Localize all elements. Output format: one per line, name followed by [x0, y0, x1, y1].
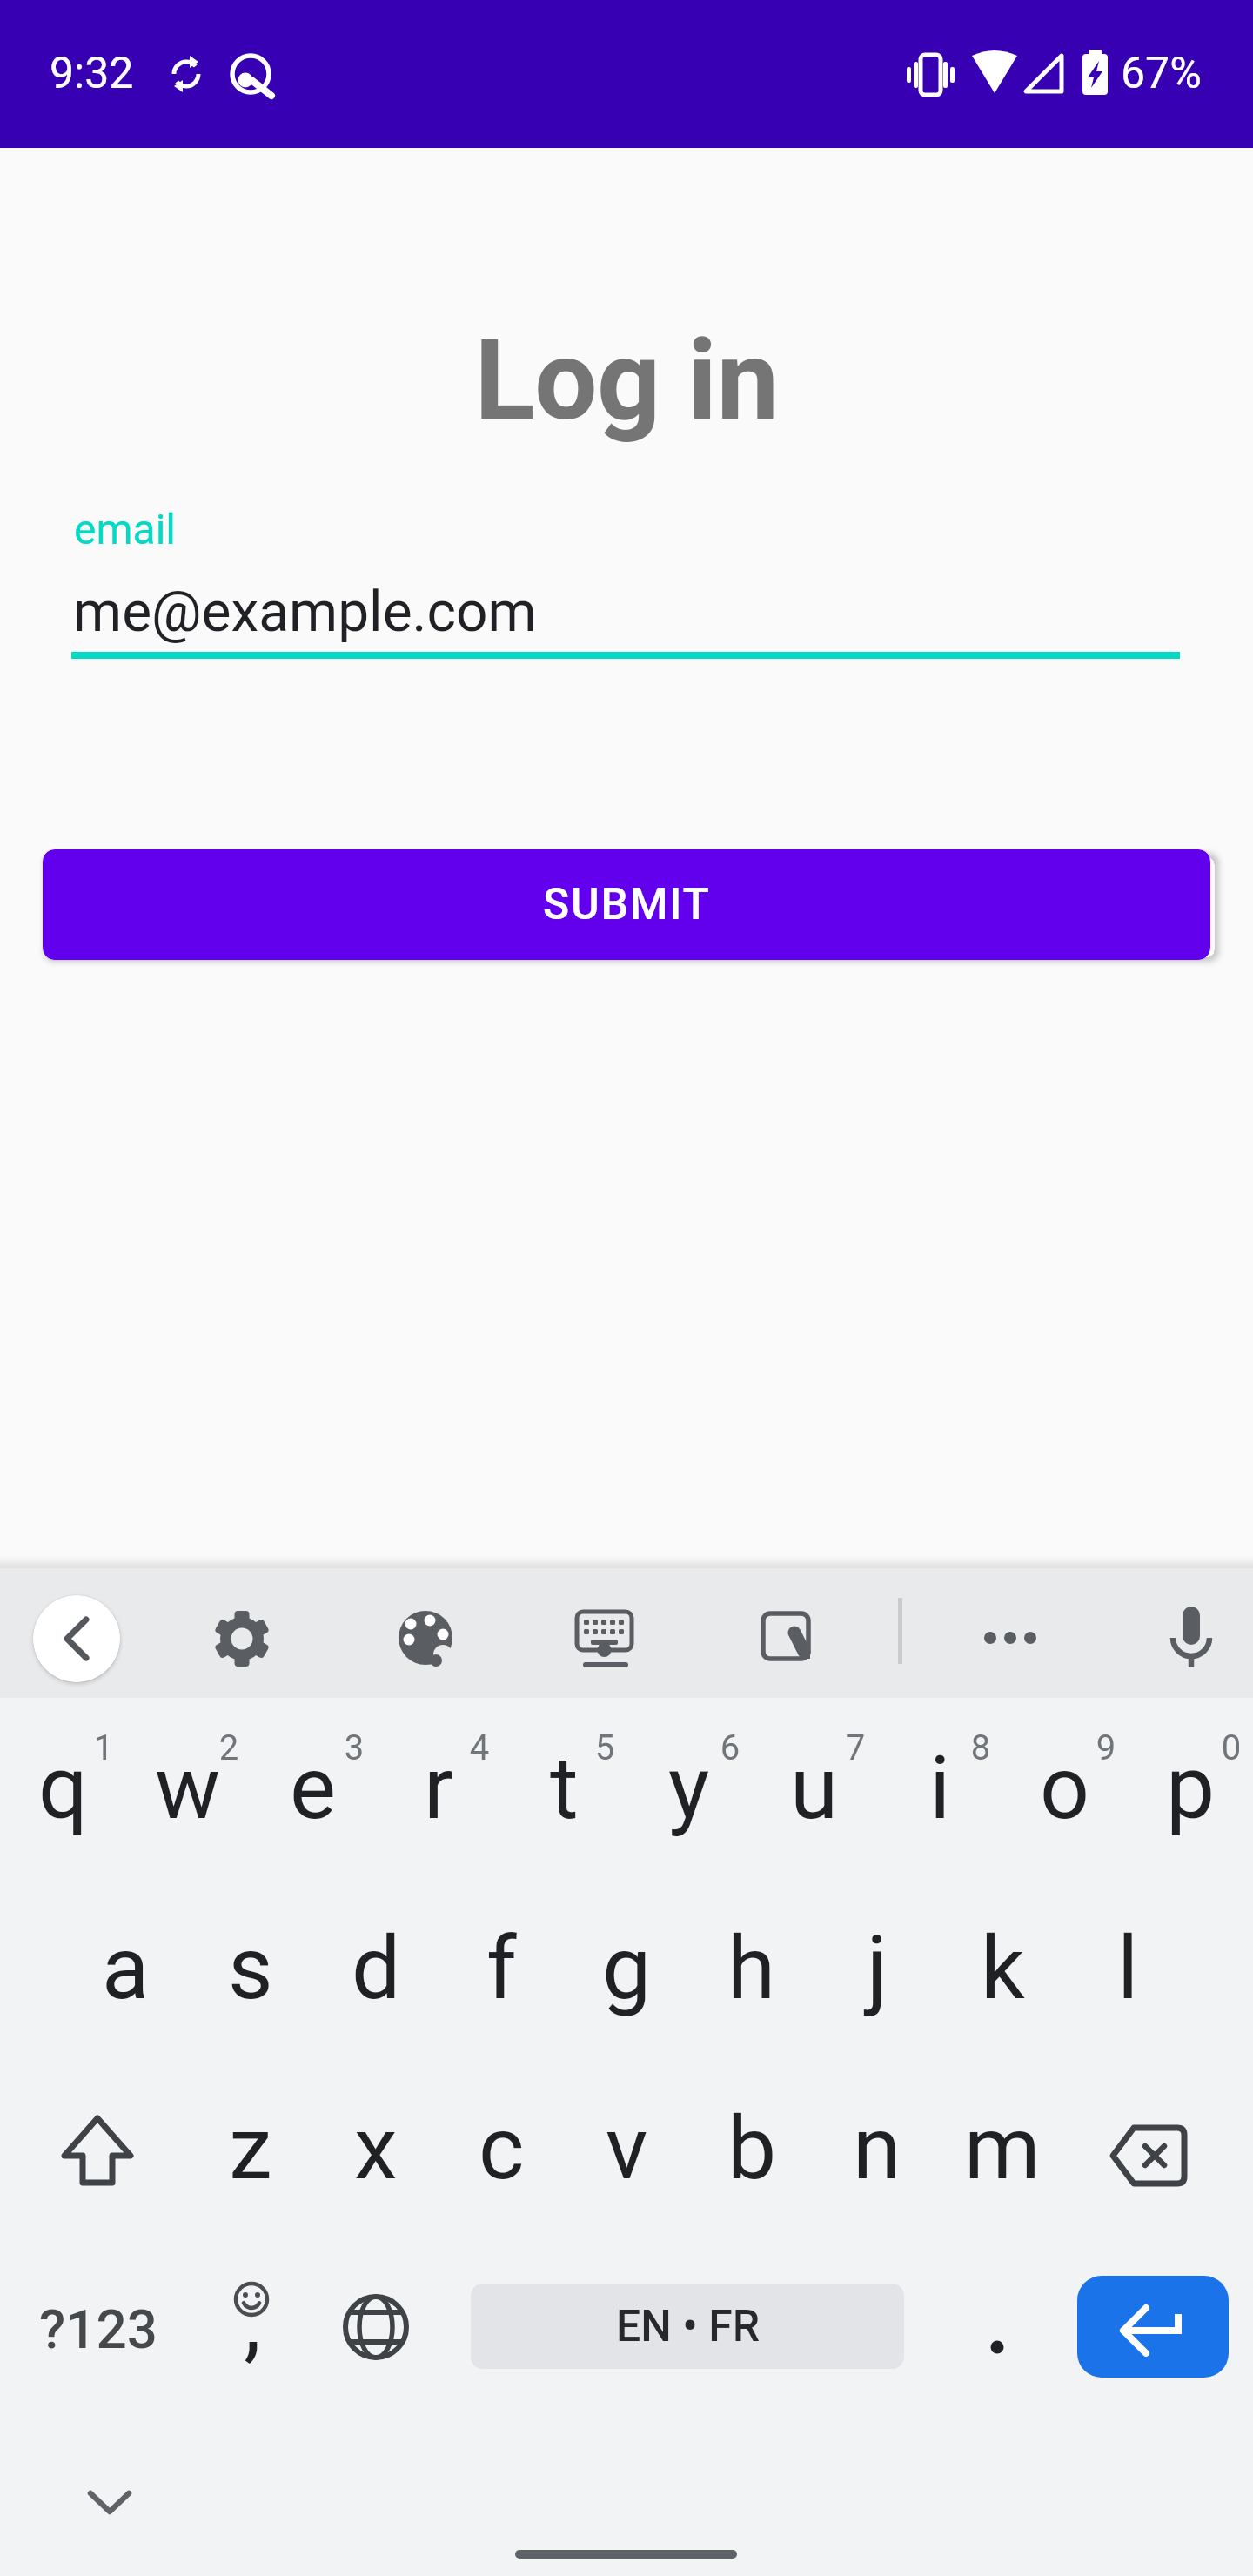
staticText: r [424, 1737, 453, 1839]
button[interactable]: f [439, 1878, 564, 2058]
button[interactable] [569, 1605, 639, 1674]
staticText: g [602, 1917, 652, 2019]
staticText: 9:32 [50, 48, 134, 99]
staticText: 5 [570, 1727, 640, 1768]
button[interactable] [339, 2291, 412, 2364]
button[interactable]: y [626, 1698, 752, 1878]
button[interactable]: n [814, 2058, 940, 2238]
staticText: Log in [0, 315, 1253, 446]
button[interactable]: c [439, 2058, 564, 2238]
button[interactable]: o [1002, 1698, 1128, 1878]
staticText: 67% [1121, 48, 1202, 99]
staticText: 1 [69, 1727, 138, 1768]
button[interactable]: , [190, 2271, 315, 2372]
button[interactable]: v [564, 2058, 689, 2238]
button[interactable]: z [188, 2058, 313, 2238]
staticText: a [102, 1917, 150, 2019]
button[interactable]: i [877, 1698, 1002, 1878]
button[interactable] [1156, 1603, 1226, 1673]
staticText: EN • FR [616, 2301, 760, 2352]
button[interactable]: e [251, 1698, 376, 1878]
button[interactable]: r [376, 1698, 501, 1878]
staticText: me@example.com [73, 580, 537, 645]
staticText: 9 [1071, 1727, 1141, 1768]
staticText: 8 [946, 1727, 1015, 1768]
staticText: l [1117, 1917, 1139, 2019]
staticText: j [867, 1917, 888, 2019]
staticText: u [790, 1737, 839, 1839]
button[interactable] [84, 2474, 136, 2526]
button[interactable]: l [1065, 1878, 1190, 2058]
staticText: z [229, 2097, 272, 2199]
staticText: k [981, 1917, 1025, 2019]
staticText: t [550, 1737, 579, 1839]
staticText: h [727, 1917, 776, 2019]
staticText: e [290, 1737, 337, 1839]
staticText: s [228, 1917, 273, 2019]
button[interactable] [58, 2111, 137, 2190]
button[interactable]: x [313, 2058, 439, 2238]
staticText: f [486, 1917, 517, 2019]
button[interactable]: w [125, 1698, 251, 1878]
button[interactable]: j [814, 1878, 940, 2058]
staticText: 4 [445, 1727, 514, 1768]
button[interactable] [935, 2268, 1060, 2390]
button[interactable] [71, 487, 1180, 661]
staticText: 6 [695, 1727, 765, 1768]
button[interactable]: u [752, 1698, 877, 1878]
button[interactable] [755, 1601, 825, 1671]
button[interactable]: p [1128, 1698, 1253, 1878]
staticText: n [853, 2097, 901, 2199]
staticText: x [354, 2097, 398, 2199]
staticText: email [74, 505, 176, 553]
staticText: v [606, 2097, 648, 2199]
staticText: 2 [194, 1727, 264, 1768]
button[interactable] [391, 1603, 460, 1673]
staticText: b [727, 2097, 777, 2199]
staticText: ?123 [11, 2298, 185, 2361]
button[interactable]: h [689, 1878, 814, 2058]
button[interactable]: b [689, 2058, 814, 2238]
staticText: 7 [821, 1727, 890, 1768]
staticText: 0 [1196, 1727, 1253, 1768]
staticText: c [479, 2097, 525, 2199]
button[interactable]: k [940, 1878, 1065, 2058]
staticText: p [1166, 1737, 1216, 1839]
staticText: d [352, 1917, 401, 2019]
button[interactable]: t [501, 1698, 626, 1878]
staticText: SUBMIT [543, 879, 711, 930]
button[interactable] [1077, 2276, 1229, 2378]
staticText: q [38, 1737, 88, 1839]
button[interactable]: s [188, 1878, 313, 2058]
button[interactable]: SUBMIT [43, 849, 1210, 960]
staticText: y [668, 1737, 710, 1839]
button[interactable] [207, 1604, 277, 1674]
button[interactable] [971, 1612, 1049, 1664]
staticText: 3 [319, 1727, 389, 1768]
button[interactable]: d [313, 1878, 439, 2058]
button[interactable]: g [564, 1878, 689, 2058]
button[interactable]: q [0, 1698, 125, 1878]
button[interactable] [33, 1595, 120, 1682]
button[interactable]: EN • FR [471, 2284, 904, 2369]
staticText: w [155, 1737, 221, 1839]
button[interactable]: ?123 [11, 2298, 185, 2361]
staticText: i [929, 1737, 951, 1839]
staticText: o [1040, 1737, 1090, 1839]
button[interactable]: m [940, 2058, 1065, 2238]
staticText: m [964, 2097, 1041, 2199]
button[interactable]: a [63, 1878, 188, 2058]
button[interactable] [1108, 2121, 1195, 2190]
staticText: , [190, 2271, 315, 2372]
